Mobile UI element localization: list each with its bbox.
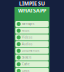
button[interactable]: Audios bbox=[15, 41, 49, 47]
staticText: WHATSAPP bbox=[18, 7, 46, 14]
button[interactable]: Cache bbox=[15, 61, 49, 67]
button[interactable]: Otros bbox=[15, 68, 49, 72]
staticText: LIMPIE SU bbox=[19, 0, 45, 7]
button[interactable]: Mensajes bbox=[15, 21, 49, 27]
button[interactable]: Videos bbox=[15, 34, 49, 40]
staticText: Fotos bbox=[22, 29, 29, 32]
staticText: Otros bbox=[22, 69, 29, 72]
staticText: Audios bbox=[22, 42, 32, 46]
button[interactable]: Stickers bbox=[15, 54, 49, 60]
staticText: Documentos bbox=[22, 49, 39, 52]
staticText: Stickers bbox=[22, 56, 31, 59]
staticText: Cache bbox=[22, 62, 30, 66]
staticText: Mensajes bbox=[22, 22, 34, 26]
button[interactable]: Fotos bbox=[15, 28, 49, 34]
button[interactable]: Documentos bbox=[15, 48, 49, 54]
staticText: Videos bbox=[22, 36, 32, 39]
